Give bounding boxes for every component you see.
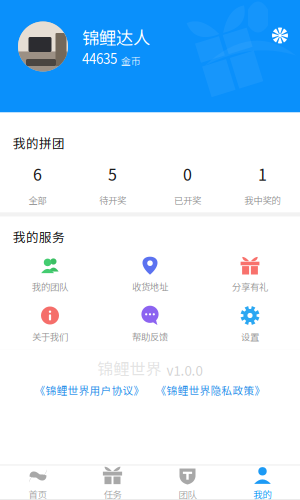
button[interactable]: 首页 — [0, 465, 75, 499]
staticText: 待开奖 — [99, 193, 126, 207]
staticText: 任务 — [103, 487, 121, 500]
button[interactable]: 设置 — [265, 20, 295, 50]
staticText: 《锦鲤世界用户协议》 — [34, 382, 144, 398]
button[interactable]: 5 — [75, 165, 150, 205]
button[interactable]: 《锦鲤世界隐私政策》 — [155, 382, 265, 398]
button[interactable]: 《锦鲤世界用户协议》 — [34, 382, 144, 398]
staticText: 我的拼团 — [13, 133, 65, 152]
button[interactable]: 6 — [0, 165, 75, 205]
staticText: 收货地址 — [132, 280, 168, 293]
staticText: 我的 — [253, 487, 271, 500]
button[interactable]: 任务 — [75, 465, 150, 499]
button[interactable]: 分享有礼 — [200, 255, 300, 291]
button[interactable]: 0 — [150, 165, 225, 205]
staticText: 金币 — [121, 53, 141, 68]
staticText: 6 — [33, 162, 42, 185]
staticText: 我的服务 — [13, 227, 65, 246]
staticText: 已开奖 — [174, 193, 201, 207]
button[interactable]: 我的团队 — [0, 255, 100, 291]
button[interactable]: 团队 — [150, 465, 225, 499]
staticText: 锦鲤达人 — [82, 24, 150, 50]
staticText: 《锦鲤世界隐私政策》 — [155, 382, 265, 398]
staticText: 44635 — [82, 48, 117, 68]
button[interactable]: 1 — [225, 165, 300, 205]
staticText: 首页 — [28, 487, 46, 500]
button[interactable]: 我的 — [225, 465, 300, 499]
staticText: 设置 — [241, 330, 259, 343]
staticText: 1 — [258, 162, 267, 185]
staticText: 锦鲤世界 — [97, 356, 161, 380]
staticText: 团队 — [178, 487, 196, 500]
button[interactable]: 收货地址 — [100, 255, 200, 291]
staticText: v1.0.0 — [166, 360, 202, 380]
staticText: 我中奖的 — [244, 193, 280, 207]
staticText: 我的团队 — [32, 280, 68, 293]
staticText: 全部 — [28, 193, 46, 207]
staticText: 0 — [183, 162, 192, 185]
staticText: 5 — [108, 162, 117, 185]
staticText: 分享有礼 — [232, 280, 268, 293]
button[interactable]: 帮助反馈 — [100, 305, 200, 341]
button[interactable]: 设置 — [200, 305, 300, 341]
staticText: 帮助反馈 — [132, 330, 168, 343]
button[interactable]: 关于我们 — [0, 305, 100, 341]
staticText: 关于我们 — [32, 330, 68, 343]
